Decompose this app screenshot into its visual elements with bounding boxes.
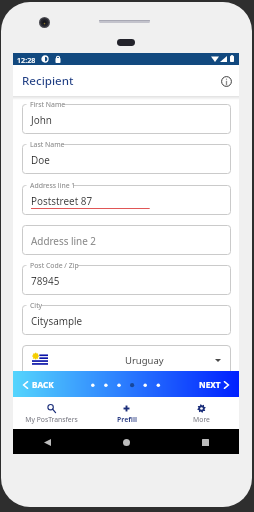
staticText: Citysample (31, 314, 83, 327)
staticText: My PosTransfers (25, 415, 78, 424)
staticText: Prefill (117, 415, 137, 424)
button[interactable]: More (164, 397, 239, 429)
button[interactable]: BACK (19, 371, 58, 398)
button[interactable]: Uruguay (22, 345, 231, 375)
staticText: More (193, 415, 210, 424)
button[interactable]: Home (118, 434, 134, 450)
staticText: Uruguay (125, 354, 164, 367)
button[interactable]: Address line 1 (22, 185, 231, 215)
button[interactable]: NEXT (195, 371, 233, 398)
staticText: Post Code / Zip (30, 261, 79, 270)
button[interactable]: Post Code / Zip (22, 265, 231, 295)
button[interactable]: Prefill (89, 397, 164, 429)
staticText: John (31, 113, 52, 126)
button[interactable]: Last Name (22, 144, 231, 174)
staticText: BACK (32, 379, 54, 390)
staticText: Last Name (30, 140, 65, 149)
staticText: 12:28 (17, 55, 36, 65)
button[interactable]: My PosTransfers (13, 397, 89, 429)
button[interactable]: Information (218, 73, 234, 89)
button[interactable]: Address line 2 (22, 225, 231, 255)
staticText: NEXT (199, 379, 221, 390)
staticText: Address line 1 (30, 181, 76, 190)
button[interactable]: Back (39, 434, 55, 450)
button[interactable]: Recents (197, 434, 213, 450)
button[interactable]: City (22, 305, 231, 335)
staticText: City (30, 301, 43, 310)
staticText: Doe (31, 153, 50, 166)
staticText: Poststreet 87 (31, 194, 93, 207)
staticText: 78945 (31, 274, 60, 287)
button[interactable]: First Name (22, 104, 231, 134)
staticText: First Name (30, 100, 66, 109)
staticText: Recipient (22, 73, 74, 89)
staticText: Address line 2 (31, 234, 97, 247)
